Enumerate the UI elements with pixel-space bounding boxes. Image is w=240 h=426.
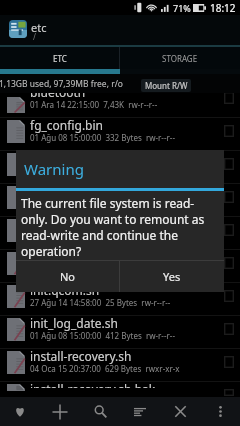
- staticText: 01 Ağu 08 15:00:00 332 Bytes rw-r--r--: [30, 132, 230, 143]
- staticText: init_log_date.sh: [30, 315, 220, 331]
- button[interactable]: hosts: [0, 249, 240, 282]
- button[interactable]: ETC: [0, 47, 119, 69]
- button[interactable]: Search: [80, 397, 120, 426]
- staticText: bluetooth: [30, 93, 220, 100]
- staticText: 01 Ağu 08 15:00:00 85 Bytes rw-r--r--: [30, 264, 230, 275]
- button[interactable]: fonts: [0, 183, 240, 216]
- button[interactable]: init.qcom.sh: [0, 282, 240, 315]
- staticText: 27 Ağu 14 14:58:00 25 Bytes rw-r--r--: [30, 297, 230, 308]
- staticText: 18:12: [210, 1, 236, 15]
- button[interactable]: firmware: [0, 150, 240, 183]
- staticText: STORAGE: [162, 53, 198, 64]
- button[interactable]: More options: [200, 397, 240, 426]
- staticText: 01 Ağu 08 15:00:00 1,01K rw-r--r--: [30, 198, 230, 209]
- staticText: 01 Ağu 08 15:00:00 1,39K rw-r--r--: [30, 165, 230, 176]
- staticText: hosts: [30, 249, 220, 265]
- button[interactable]: Mount R/W: [141, 79, 191, 92]
- button[interactable]: gps.conf: [0, 216, 240, 249]
- staticText: Warning: [24, 159, 84, 179]
- staticText: The current file system is read- only. D…: [21, 195, 205, 259]
- button[interactable]: Bookmarks: [0, 397, 40, 426]
- staticText: 1,13GB used, 97,39MB free, r/o: [0, 78, 123, 90]
- staticText: 01 Ağu 08 15:00:00 39 Bytes rw-r--r--: [30, 231, 230, 242]
- staticText: fonts: [30, 183, 220, 199]
- staticText: No: [60, 269, 76, 284]
- staticText: install-recovery.sh: [30, 348, 220, 364]
- staticText: /: [33, 31, 36, 42]
- staticText: gps.conf: [30, 216, 220, 232]
- staticText: init.qcom.sh: [30, 282, 220, 298]
- staticText: etc: [31, 20, 47, 35]
- staticText: 71%: [173, 2, 191, 14]
- staticText: 01 Ara 14 22:15:00 7,43K rw-r--r--: [30, 99, 230, 110]
- button[interactable]: init_log_date.sh: [0, 315, 240, 348]
- button[interactable]: New folder: [40, 397, 80, 426]
- button[interactable]: No: [16, 261, 119, 292]
- button[interactable]: etc: [0, 15, 240, 45]
- staticText: install-recovery.sh.bak: [30, 381, 220, 388]
- button[interactable]: Sort: [120, 397, 160, 426]
- staticText: firmware: [30, 150, 220, 166]
- button[interactable]: Close: [160, 397, 200, 426]
- staticText: Mount R/W: [145, 80, 188, 91]
- staticText: Yes: [163, 269, 181, 284]
- staticText: 01 Ağu 08 15:00:00 412 Bytes rw-r--r--: [30, 330, 230, 341]
- button[interactable]: fg_config.bin: [0, 117, 240, 150]
- staticText: ETC: [53, 53, 67, 64]
- staticText: fg_config.bin: [30, 117, 220, 133]
- button[interactable]: bluetooth: [0, 93, 240, 117]
- staticText: 04 Oca 15 20:37:00 629 Bytes rwxr-xr-x: [30, 363, 230, 374]
- button[interactable]: install-recovery.sh: [0, 348, 240, 381]
- button[interactable]: Yes: [120, 261, 224, 292]
- button[interactable]: install-recovery.sh.bak: [0, 381, 240, 388]
- button[interactable]: STORAGE: [120, 47, 240, 69]
